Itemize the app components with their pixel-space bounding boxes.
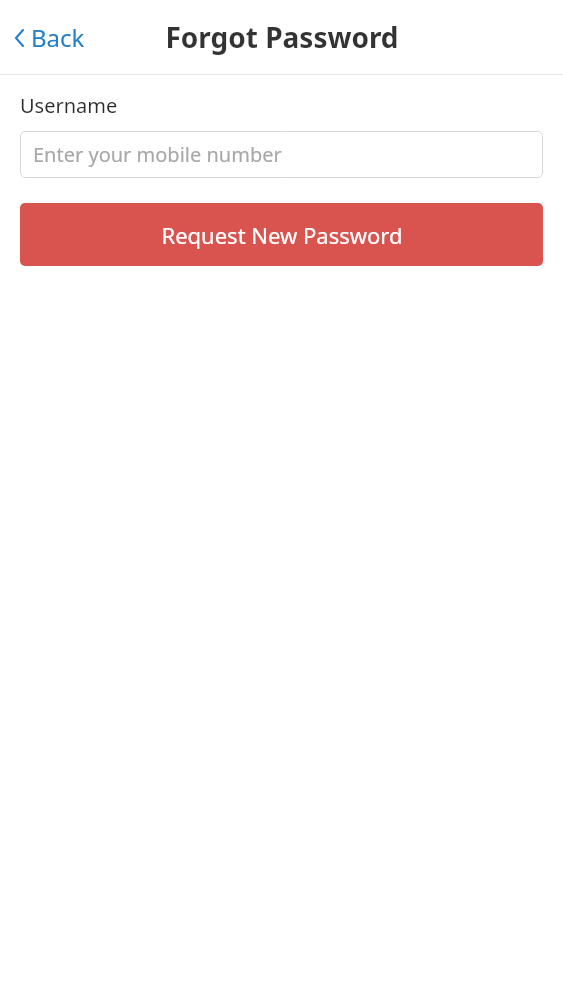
button[interactable]: Back bbox=[10, 15, 89, 60]
staticText: Back bbox=[31, 21, 85, 54]
staticText: Request New Password bbox=[161, 220, 403, 250]
staticText: Forgot Password bbox=[165, 18, 399, 56]
staticText: Username bbox=[20, 92, 118, 119]
button[interactable]: Request New Password bbox=[20, 203, 543, 266]
staticText: Enter your mobile number bbox=[33, 141, 282, 168]
button[interactable]: Enter your mobile number bbox=[20, 131, 543, 178]
